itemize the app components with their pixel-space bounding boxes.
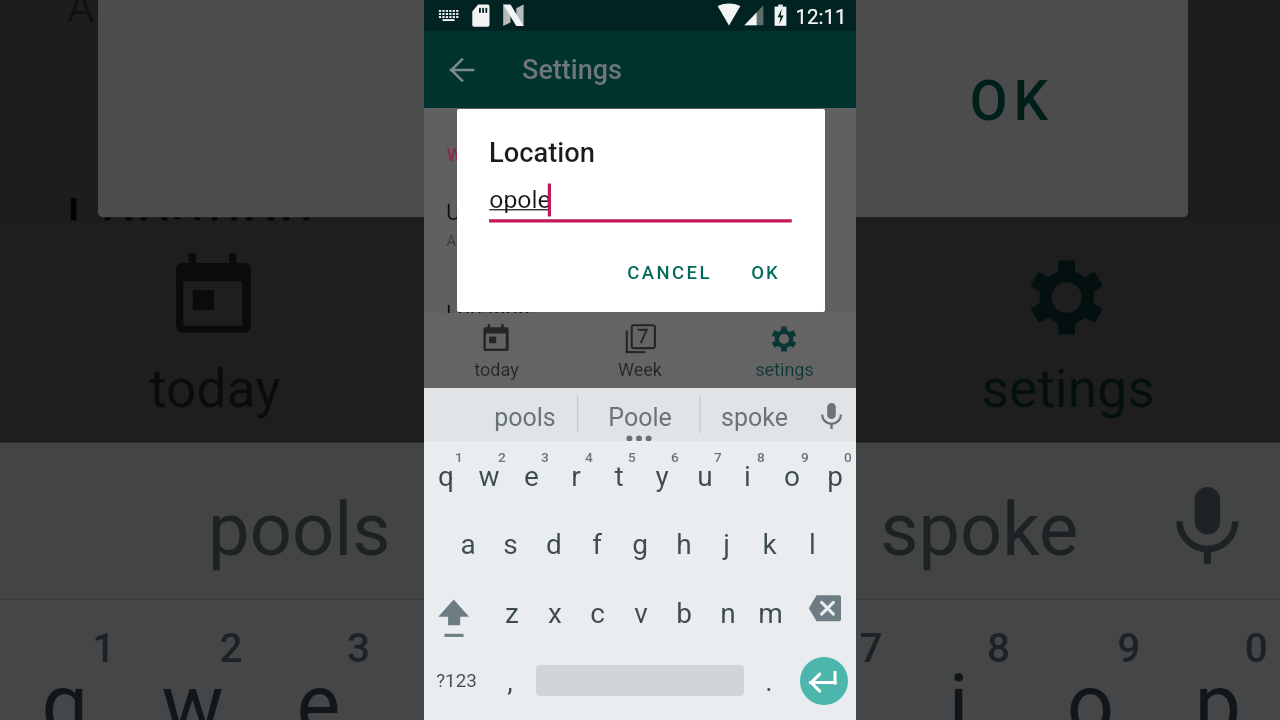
button[interactable]: Weather (446, 144, 515, 165)
button[interactable]: k (748, 509, 791, 579)
button[interactable]: u (767, 600, 895, 720)
button[interactable]: w (127, 600, 255, 720)
staticText: a (460, 528, 476, 561)
button[interactable]: r (385, 600, 513, 720)
button[interactable]: l (791, 509, 834, 579)
staticText: 9 (801, 449, 809, 465)
button[interactable]: OK (918, 31, 1102, 173)
staticText: 1 (92, 623, 116, 671)
button[interactable]: CANCEL (615, 249, 724, 297)
button[interactable]: w (467, 441, 510, 511)
button[interactable]: m (749, 578, 792, 648)
button[interactable]: r (554, 441, 597, 511)
button[interactable]: f (575, 509, 618, 579)
staticText: OK (751, 262, 780, 284)
button[interactable]: p (813, 441, 856, 511)
staticText: ?123 (436, 670, 477, 692)
staticText: Units (446, 200, 496, 225)
button[interactable]: Voice input (1147, 443, 1280, 600)
button[interactable]: spoke (700, 388, 808, 441)
button[interactable]: s (489, 509, 532, 579)
staticText: 1 (455, 449, 463, 465)
button[interactable]: Voice input (811, 388, 856, 441)
button[interactable]: a (446, 509, 489, 579)
button[interactable]: j (705, 509, 748, 579)
staticText: 6 (732, 623, 756, 671)
staticText: q (41, 656, 89, 720)
button[interactable]: pools (71, 443, 527, 600)
button[interactable]: Poole (579, 388, 701, 441)
button[interactable]: y (640, 441, 683, 511)
button[interactable]: g (618, 509, 661, 579)
button[interactable]: q (424, 441, 467, 511)
staticText: u (697, 460, 713, 493)
button[interactable]: n (706, 578, 749, 648)
staticText: Automatic (65, 0, 267, 31)
staticText: j (723, 528, 730, 561)
button[interactable]: . (749, 646, 789, 716)
button[interactable]: ?123 (424, 646, 488, 716)
staticText: opole (489, 185, 551, 214)
button[interactable]: Backspace (791, 578, 856, 648)
button[interactable]: Week (427, 220, 853, 443)
button[interactable]: t (597, 441, 640, 511)
staticText: 0 (844, 449, 852, 465)
button[interactable]: Units (424, 200, 856, 225)
button[interactable]: e (510, 441, 553, 511)
button[interactable]: today (0, 220, 427, 443)
button[interactable]: pools (448, 388, 602, 441)
button[interactable]: o (770, 441, 813, 511)
button[interactable]: p (1153, 600, 1280, 720)
button[interactable]: CANCEL (566, 31, 889, 173)
button[interactable]: h (662, 509, 705, 579)
staticText: 9 (1117, 623, 1141, 671)
button[interactable]: spoke (818, 443, 1138, 600)
button[interactable]: q (0, 600, 127, 720)
button[interactable]: , (490, 646, 530, 716)
staticText: 2 (498, 449, 506, 465)
staticText: Poole (545, 487, 735, 573)
staticText: b (676, 597, 692, 630)
button[interactable]: Location (446, 301, 530, 326)
button[interactable]: e (255, 600, 382, 720)
button[interactable]: i (726, 441, 769, 511)
staticText: t (614, 460, 624, 493)
staticText: 6 (671, 449, 679, 465)
staticText: r (571, 460, 581, 493)
staticText: OK (969, 69, 1055, 134)
staticText: p (827, 460, 843, 493)
button[interactable]: d (532, 509, 575, 579)
button[interactable]: today (424, 313, 568, 388)
button[interactable]: Shift (424, 578, 489, 648)
staticText: i (948, 656, 969, 720)
staticText: Poole (608, 403, 672, 432)
button[interactable]: Location (65, 185, 314, 259)
button[interactable]: x (533, 578, 576, 648)
staticText: z (505, 597, 519, 630)
button[interactable]: y (640, 600, 767, 720)
button[interactable]: v (619, 578, 662, 648)
staticText: q (438, 460, 454, 493)
button[interactable]: Navigate up (434, 43, 490, 99)
button[interactable]: i (895, 600, 1022, 720)
staticText: u (809, 656, 856, 720)
button[interactable]: t (513, 600, 640, 720)
button[interactable]: setings (712, 313, 856, 388)
button[interactable]: z (490, 578, 533, 648)
button[interactable]: Enter (800, 657, 848, 705)
button[interactable]: setings (853, 220, 1280, 443)
staticText: 5 (604, 623, 628, 671)
button[interactable]: OK (734, 249, 796, 297)
staticText: 12:11 (795, 5, 847, 29)
button[interactable]: c (576, 578, 619, 648)
staticText: pools (207, 487, 391, 573)
button[interactable]: Week (568, 313, 712, 388)
button[interactable]: o (1025, 600, 1153, 720)
staticText: spoke (880, 487, 1078, 573)
button[interactable]: u (683, 441, 726, 511)
staticText: today (474, 359, 519, 380)
button[interactable]: b (662, 578, 705, 648)
button[interactable]: Poole (459, 443, 821, 600)
